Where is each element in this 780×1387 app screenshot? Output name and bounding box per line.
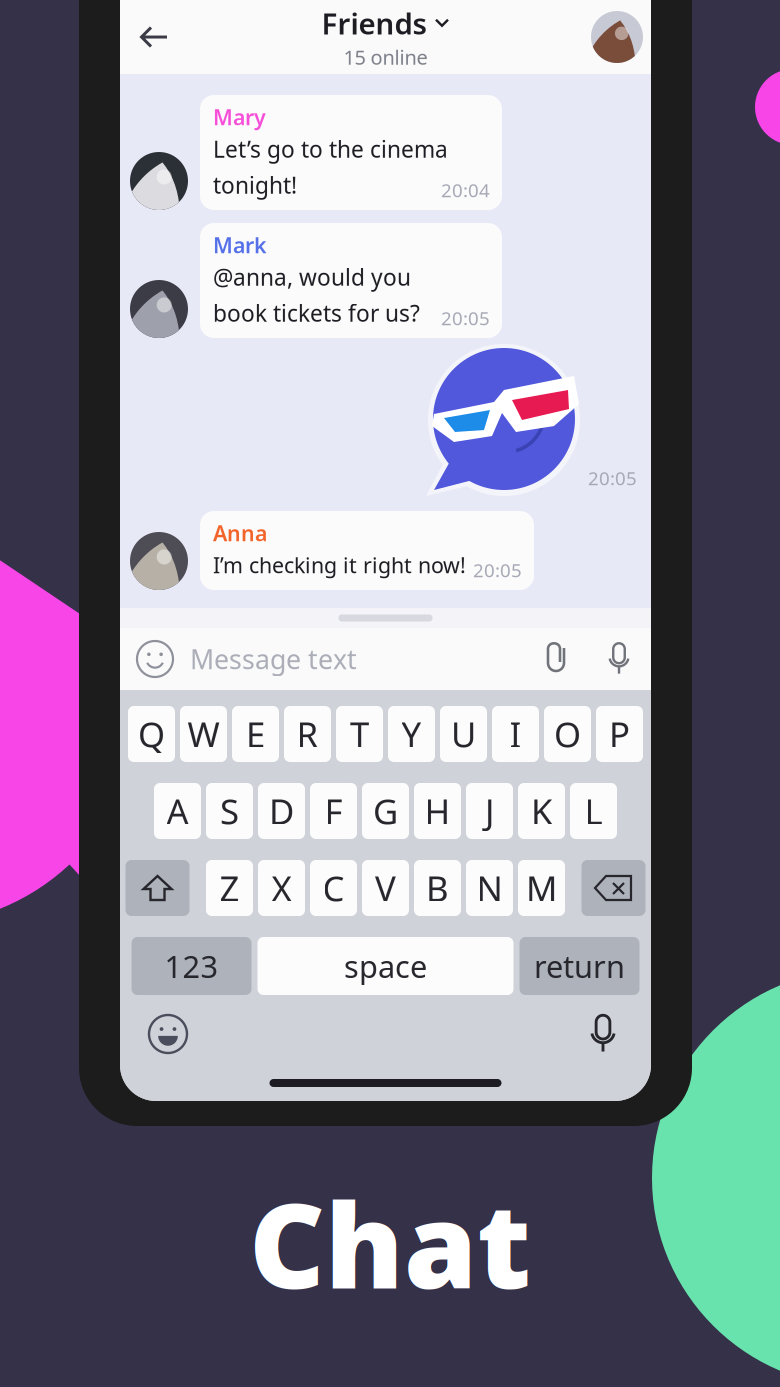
button[interactable]: Delete bbox=[581, 860, 645, 916]
button[interactable]: M bbox=[518, 860, 565, 916]
button[interactable]: K bbox=[518, 783, 565, 839]
staticText: Mark bbox=[213, 231, 267, 259]
staticText: X bbox=[271, 865, 291, 911]
staticText: tonight! bbox=[213, 170, 297, 200]
staticText: U bbox=[451, 711, 476, 757]
button[interactable]: T bbox=[336, 706, 383, 762]
staticText: Z bbox=[219, 865, 239, 911]
button[interactable]: Emoji bbox=[120, 628, 190, 690]
staticText: E bbox=[246, 711, 265, 757]
staticText: Let’s go to the cinema bbox=[213, 134, 448, 164]
button[interactable]: O bbox=[544, 706, 591, 762]
button[interactable]: 123 bbox=[131, 937, 251, 995]
staticText: Chat bbox=[249, 1165, 531, 1321]
button[interactable]: F bbox=[310, 783, 357, 839]
staticText: Y bbox=[401, 711, 421, 757]
button[interactable]: Q bbox=[128, 706, 175, 762]
button[interactable]: P bbox=[596, 706, 643, 762]
staticText: D bbox=[269, 788, 294, 834]
button[interactable]: Shift bbox=[125, 860, 189, 916]
staticText: K bbox=[531, 788, 552, 834]
button[interactable]: Back bbox=[120, 0, 188, 74]
button[interactable]: W bbox=[180, 706, 227, 762]
button[interactable]: Y bbox=[388, 706, 435, 762]
button[interactable]: U bbox=[440, 706, 487, 762]
staticText: B bbox=[426, 865, 449, 911]
staticText: I bbox=[509, 711, 521, 757]
button[interactable]: Emoji keyboard bbox=[120, 1003, 216, 1065]
button[interactable]: A bbox=[154, 783, 201, 839]
button[interactable]: C bbox=[310, 860, 357, 916]
staticText: R bbox=[296, 711, 318, 757]
staticText: V bbox=[375, 865, 396, 911]
button[interactable]: J bbox=[466, 783, 513, 839]
button[interactable]: Record voice message bbox=[587, 628, 651, 690]
staticText: S bbox=[220, 788, 239, 834]
button[interactable]: L bbox=[570, 783, 617, 839]
staticText: L bbox=[584, 788, 602, 834]
staticText: N bbox=[476, 865, 502, 911]
button[interactable]: Dictate bbox=[555, 1003, 651, 1065]
button[interactable]: G bbox=[362, 783, 409, 839]
staticText: I’m checking it right now! bbox=[213, 551, 466, 579]
staticText: 20:05 bbox=[588, 466, 637, 490]
staticText: G bbox=[373, 788, 398, 834]
button[interactable]: S bbox=[206, 783, 253, 839]
button[interactable]: Profile bbox=[583, 0, 651, 74]
button[interactable]: H bbox=[414, 783, 461, 839]
button[interactable]: I bbox=[492, 706, 539, 762]
staticText: Anna bbox=[213, 519, 267, 547]
button[interactable]: Attach file bbox=[527, 628, 587, 690]
staticText: H bbox=[424, 788, 450, 834]
button[interactable]: X bbox=[258, 860, 305, 916]
button[interactable]: R bbox=[284, 706, 331, 762]
staticText: M bbox=[526, 865, 557, 911]
button[interactable]: V bbox=[362, 860, 409, 916]
staticText: book tickets for us? bbox=[213, 298, 420, 328]
staticText: T bbox=[350, 711, 369, 757]
button[interactable]: Friends bbox=[321, 4, 449, 70]
staticText: @anna, would you bbox=[213, 262, 411, 292]
staticText: Friends bbox=[321, 4, 426, 43]
staticText: W bbox=[187, 711, 219, 757]
staticText: return bbox=[534, 946, 625, 986]
button[interactable]: D bbox=[258, 783, 305, 839]
staticText: 15 online bbox=[343, 44, 427, 70]
staticText: space bbox=[344, 946, 427, 986]
staticText: A bbox=[166, 788, 188, 834]
button[interactable]: return bbox=[519, 937, 639, 995]
staticText: C bbox=[322, 865, 344, 911]
staticText: Q bbox=[138, 711, 165, 757]
staticText: 20:05 bbox=[473, 558, 522, 582]
staticText: 20:04 bbox=[441, 178, 490, 202]
button[interactable]: Chat bbox=[0, 1188, 780, 1298]
staticText: Mary bbox=[213, 103, 266, 131]
button[interactable]: B bbox=[414, 860, 461, 916]
staticText: 20:05 bbox=[441, 306, 490, 330]
staticText: P bbox=[609, 711, 630, 757]
staticText: J bbox=[485, 788, 494, 834]
button[interactable]: space bbox=[257, 937, 513, 995]
staticText: O bbox=[554, 711, 581, 757]
staticText: 123 bbox=[164, 946, 218, 986]
button[interactable]: E bbox=[232, 706, 279, 762]
staticText: Message text bbox=[190, 641, 357, 677]
button[interactable]: N bbox=[466, 860, 513, 916]
staticText: F bbox=[324, 788, 342, 834]
button[interactable]: Z bbox=[206, 860, 253, 916]
